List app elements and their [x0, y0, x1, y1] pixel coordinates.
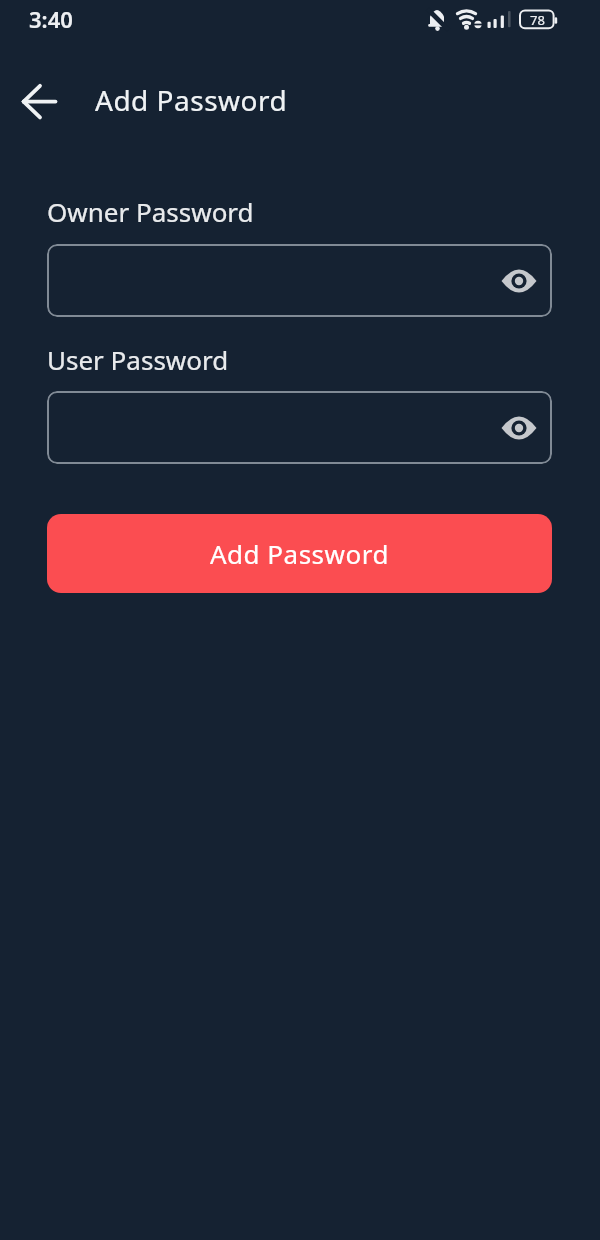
staticText: Add Password	[210, 536, 389, 571]
staticText: 78	[530, 11, 545, 29]
staticText: Owner Password	[47, 194, 254, 229]
button[interactable]	[14, 78, 62, 126]
staticText: User Password	[47, 342, 229, 377]
button[interactable]: Add Password	[47, 514, 552, 593]
button[interactable]	[500, 414, 538, 442]
button[interactable]	[500, 267, 538, 295]
staticText: Add Password	[95, 81, 288, 119]
staticText: 3:40	[29, 4, 73, 34]
button[interactable]	[47, 244, 552, 317]
button[interactable]	[47, 391, 552, 464]
